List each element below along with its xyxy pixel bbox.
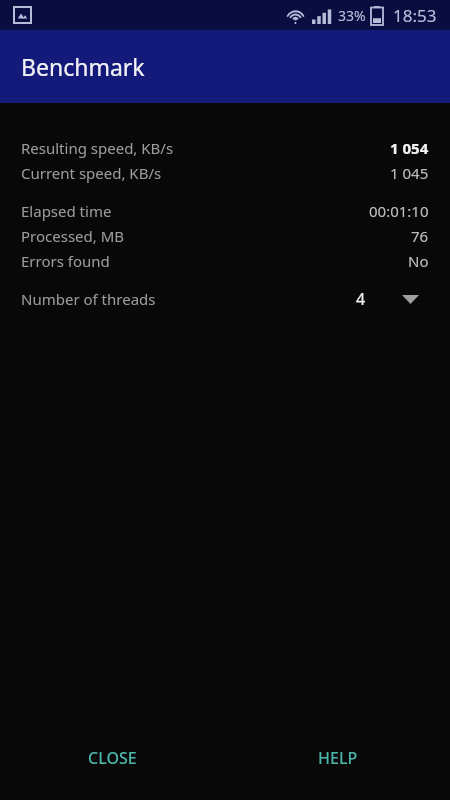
other: Select number of threads xyxy=(400,289,420,309)
staticText: Current speed, KB/s xyxy=(21,163,162,183)
staticText: 76 xyxy=(411,226,429,246)
staticText: 1 054 xyxy=(390,138,429,158)
staticText: Resulting speed, KB/s xyxy=(21,138,174,158)
staticText: 00:01:10 xyxy=(369,201,429,221)
staticText: 1 045 xyxy=(390,163,429,183)
staticText: 33% xyxy=(338,6,366,25)
staticText: HELP xyxy=(318,747,358,769)
staticText: Number of threads xyxy=(21,289,156,309)
staticText: 4 xyxy=(356,288,366,310)
button[interactable]: Errors found xyxy=(0,248,450,273)
button[interactable]: Resulting speed, KB/s xyxy=(0,135,450,160)
button[interactable]: Current speed, KB/s xyxy=(0,160,450,185)
staticText: No xyxy=(408,251,429,271)
staticText: Processed, MB xyxy=(21,226,125,246)
staticText: Errors found xyxy=(21,251,110,271)
button[interactable]: Elapsed time xyxy=(0,198,450,223)
button[interactable]: Processed, MB xyxy=(0,223,450,248)
staticText: 18:53 xyxy=(393,4,437,27)
staticText: Benchmark xyxy=(21,51,145,82)
button[interactable]: Number of threads xyxy=(0,285,450,313)
button[interactable]: HELP xyxy=(225,734,450,782)
button[interactable]: CLOSE xyxy=(0,734,225,782)
staticText: CLOSE xyxy=(88,747,137,769)
staticText: Elapsed time xyxy=(21,201,112,221)
